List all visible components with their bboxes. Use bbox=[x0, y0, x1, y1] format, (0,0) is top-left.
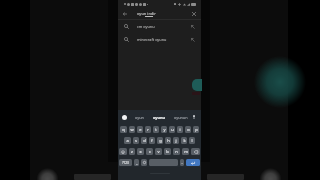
button[interactable]: h bbox=[165, 137, 171, 144]
staticText: x bbox=[139, 149, 142, 154]
staticText: oyun bbox=[135, 115, 144, 120]
button[interactable]: o bbox=[185, 126, 191, 133]
staticText: z bbox=[131, 149, 133, 154]
staticText: ?123 bbox=[122, 161, 129, 165]
button[interactable]: Shift bbox=[119, 148, 127, 155]
button[interactable]: Backspace bbox=[191, 148, 200, 155]
button[interactable]: minecraft oyunu bbox=[118, 33, 201, 46]
button[interactable]: i bbox=[177, 126, 183, 133]
staticText: oyun indir bbox=[137, 11, 157, 16]
staticText: n bbox=[175, 149, 178, 154]
staticText: i bbox=[179, 127, 181, 132]
button[interactable]: y bbox=[161, 126, 167, 133]
button[interactable]: Space bbox=[149, 159, 178, 166]
staticText: minecraft oyunu bbox=[137, 37, 167, 42]
button[interactable]: f bbox=[149, 137, 155, 144]
button[interactable]: z bbox=[129, 148, 135, 155]
staticText: h bbox=[167, 138, 170, 143]
staticText: oyunun bbox=[174, 115, 188, 120]
staticText: j bbox=[175, 138, 177, 143]
button[interactable]: v bbox=[155, 148, 162, 155]
button[interactable]: c bbox=[146, 148, 153, 155]
button[interactable]: r bbox=[145, 126, 151, 133]
staticText: d bbox=[143, 138, 146, 143]
staticText: o bbox=[187, 127, 190, 132]
button[interactable]: Insert suggestion bbox=[189, 23, 197, 31]
button[interactable]: g bbox=[157, 137, 163, 144]
staticText: e bbox=[139, 127, 142, 132]
staticText: b bbox=[166, 149, 169, 154]
button[interactable]: . bbox=[180, 159, 184, 166]
staticText: k bbox=[183, 138, 186, 143]
button[interactable]: Insert suggestion bbox=[189, 36, 197, 44]
button[interactable]: l bbox=[189, 137, 195, 144]
button[interactable]: a bbox=[124, 137, 131, 144]
button[interactable]: b bbox=[164, 148, 171, 155]
button[interactable]: p bbox=[193, 126, 199, 133]
button[interactable]: Search bbox=[186, 159, 200, 166]
button[interactable]: q bbox=[120, 126, 127, 133]
button[interactable]: ?123 bbox=[119, 159, 132, 166]
button[interactable]: d bbox=[141, 137, 147, 144]
button[interactable]: e bbox=[137, 126, 143, 133]
button[interactable]: t bbox=[153, 126, 159, 133]
button[interactable]: Voice input bbox=[191, 114, 197, 120]
button[interactable]: Clear bbox=[189, 9, 199, 19]
staticText: , bbox=[136, 160, 138, 165]
staticText: c bbox=[149, 149, 151, 154]
staticText: w bbox=[130, 127, 134, 132]
staticText: oyunu bbox=[153, 115, 165, 120]
staticText: f bbox=[151, 138, 153, 143]
button[interactable]: s bbox=[133, 137, 139, 144]
staticText: u bbox=[171, 127, 174, 132]
staticText: cm oyunu bbox=[137, 24, 155, 29]
button[interactable]: m bbox=[182, 148, 189, 155]
button[interactable]: Back bbox=[120, 9, 130, 19]
button[interactable]: w bbox=[129, 126, 135, 133]
staticText: l bbox=[191, 138, 193, 143]
staticText: r bbox=[147, 127, 149, 132]
staticText: t bbox=[155, 127, 157, 132]
button[interactable]: , bbox=[134, 159, 139, 166]
button[interactable]: Open bbox=[192, 79, 202, 91]
staticText: . bbox=[181, 160, 183, 165]
staticText: a bbox=[126, 138, 129, 143]
button[interactable]: j bbox=[173, 137, 179, 144]
button[interactable]: u bbox=[169, 126, 175, 133]
staticText: g bbox=[159, 138, 162, 143]
button[interactable]: Emoji bbox=[141, 159, 147, 166]
staticText: y bbox=[163, 127, 166, 132]
button[interactable]: x bbox=[137, 148, 144, 155]
staticText: s bbox=[135, 138, 137, 143]
staticText: q bbox=[122, 127, 125, 132]
button[interactable]: n bbox=[173, 148, 180, 155]
button[interactable]: cm oyunu bbox=[118, 20, 201, 33]
button[interactable]: k bbox=[181, 137, 187, 144]
staticText: m bbox=[184, 149, 188, 154]
button[interactable]: Google bbox=[122, 115, 127, 120]
staticText: v bbox=[157, 149, 160, 154]
staticText: p bbox=[195, 127, 198, 132]
